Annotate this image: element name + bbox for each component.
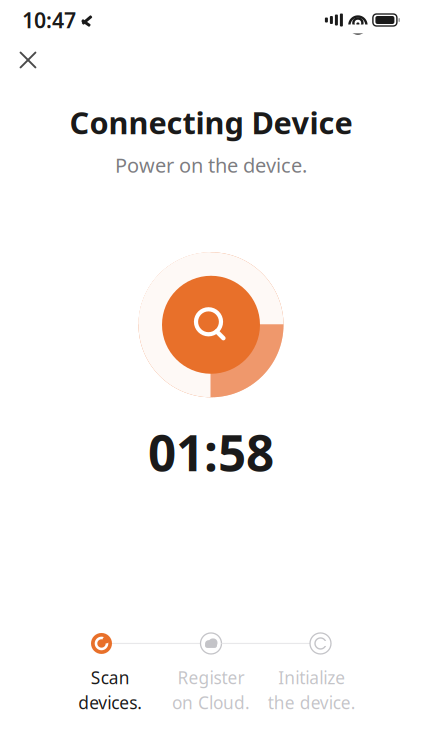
staticText: 01:58 <box>148 419 274 485</box>
staticText: Connecting Device <box>69 102 352 143</box>
staticText: Power on the device. <box>115 152 307 178</box>
staticText: Initialize <box>278 666 345 689</box>
button[interactable]: Close <box>6 38 50 82</box>
staticText: Scan <box>91 666 130 689</box>
staticText: on Cloud. <box>172 691 250 714</box>
staticText: 10:47 <box>22 6 76 34</box>
staticText: the device. <box>268 691 356 714</box>
staticText: devices. <box>78 691 142 714</box>
staticText: Register <box>177 666 244 689</box>
